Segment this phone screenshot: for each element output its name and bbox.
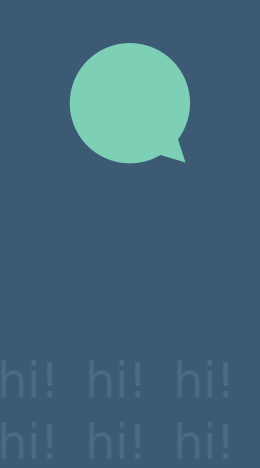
staticText: hi! xyxy=(85,353,147,408)
button[interactable]: Start a new conversation xyxy=(0,0,260,468)
staticText: hi! xyxy=(0,353,59,408)
staticText: hi! xyxy=(0,415,59,468)
staticText: hi! xyxy=(85,415,147,468)
staticText: hi! xyxy=(173,353,235,408)
staticText: hi! xyxy=(173,415,235,468)
